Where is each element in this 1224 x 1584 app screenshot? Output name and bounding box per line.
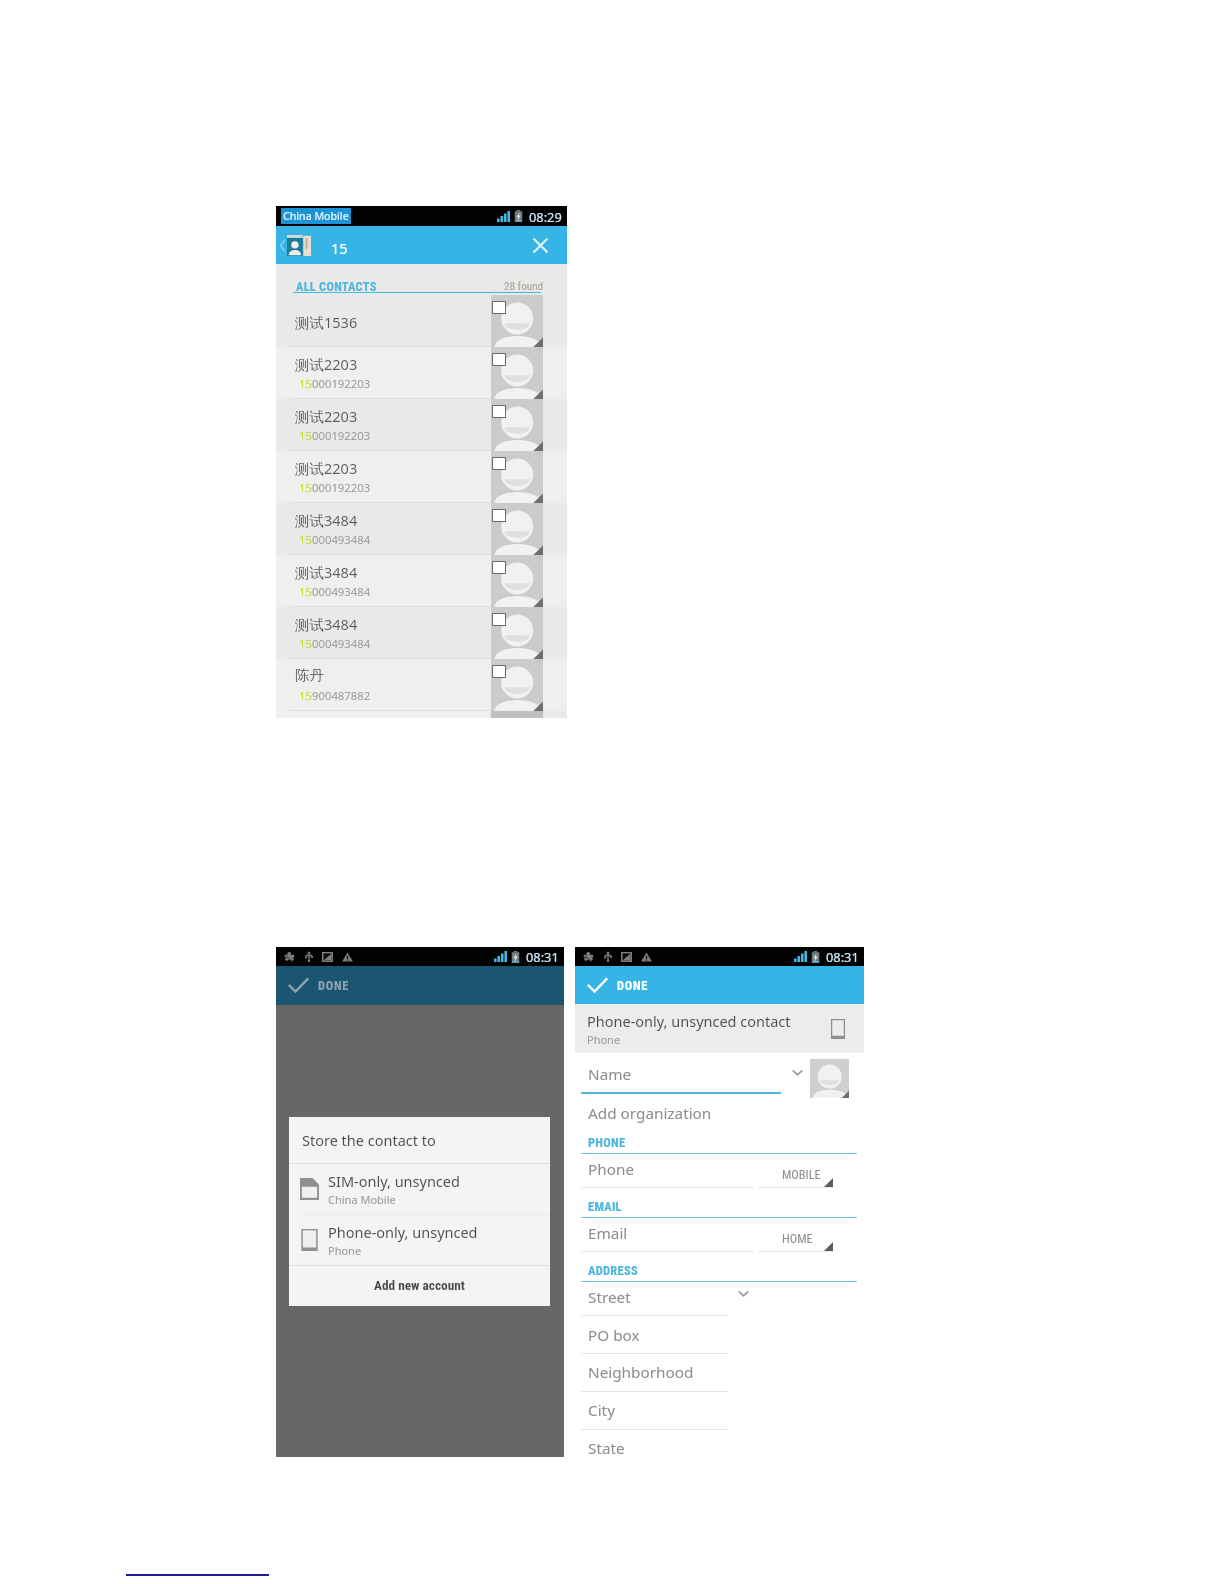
staticText: 测试3484 [295,562,358,582]
staticText: Phone-only, unsynced contact [587,1011,791,1031]
staticText: 000493484 [312,636,371,651]
staticText: 测试1536 [295,312,358,332]
button[interactable]: 测试3484 [276,555,567,607]
staticText: 15 [331,238,348,258]
staticText: DONE [617,978,648,993]
staticText: 15 [299,584,312,599]
staticText: Phone-only, unsynced [328,1222,478,1242]
staticText: 测试3484 [295,614,358,634]
staticText: 15 [299,532,312,547]
staticText: Add new account [374,1278,465,1294]
staticText: Store the contact to [302,1130,436,1150]
button[interactable]: 测试2203 [276,347,567,399]
staticText: 900487882 [312,688,371,703]
button[interactable]: 测试3484 [276,503,567,555]
staticText: SIM-only, unsynced [328,1171,460,1191]
button[interactable]: 测试2203 [276,451,567,503]
staticText: 陈丹 [295,666,324,684]
staticText: Email [588,1223,628,1244]
staticText: 000192203 [312,376,371,391]
button[interactable]: Email [575,1218,864,1252]
staticText: 08:29 [529,208,562,225]
button[interactable]: Name [575,1053,864,1094]
staticText: 15 [299,688,312,703]
button[interactable]: Phone-only, unsynced [289,1215,550,1265]
button[interactable]: Add organization [575,1094,864,1129]
staticText: 15 [299,480,312,495]
staticText: 28 found [504,280,544,293]
staticText: 测试2203 [295,458,358,478]
staticText: MOBILE [782,1167,821,1182]
staticText: PO box [588,1325,640,1346]
button[interactable]: Neighborhood [575,1354,864,1392]
button[interactable]: State [575,1430,864,1457]
staticText: 测试2203 [295,354,358,374]
staticText: HOME [782,1231,813,1246]
staticText: PHONE [588,1135,626,1150]
staticText: 000192203 [312,480,371,495]
staticText: State [588,1438,625,1459]
staticText: City [588,1400,615,1421]
staticText: DONE [318,978,349,993]
button[interactable]: Add new account [289,1266,550,1306]
staticText: China Mobile [328,1192,396,1207]
staticText: 08:31 [526,948,559,965]
staticText: Phone [328,1243,362,1258]
staticText: Neighborhood [588,1362,694,1383]
staticText: Street [588,1287,631,1308]
button[interactable]: Navigate up [276,226,316,264]
button[interactable]: ALL CONTACTS [276,264,567,295]
button[interactable]: 测试3484 [276,607,567,659]
staticText: 测试3484 [295,510,358,530]
staticText: 15 [299,428,312,443]
button[interactable]: PO box [575,1316,864,1354]
button[interactable]: City [575,1392,864,1430]
button[interactable]: Close [514,226,567,264]
button[interactable]: Street [575,1282,864,1316]
button[interactable]: 测试1536 [276,295,567,347]
button[interactable]: Phone [575,1154,864,1188]
staticText: Phone [588,1159,635,1180]
button[interactable]: SIM-only, unsynced [289,1164,550,1214]
staticText: ADDRESS [588,1263,638,1278]
staticText: 08:31 [826,948,859,965]
staticText: 15 [299,376,312,391]
staticText: China Mobile [283,209,349,223]
staticText: EMAIL [588,1199,622,1214]
staticText: 000192203 [312,428,371,443]
staticText: Add organization [588,1103,712,1124]
staticText: Phone [587,1032,621,1047]
button[interactable]: Phone-only, unsynced contact [575,1004,864,1053]
staticText: 000493484 [312,584,371,599]
staticText: 000493484 [312,532,371,547]
button[interactable]: 陈丹 [276,659,567,711]
staticText: 15 [299,636,312,651]
staticText: Name [588,1064,632,1085]
staticText: ALL CONTACTS [296,279,377,294]
button[interactable]: 测试2203 [276,399,567,451]
staticText: 测试2203 [295,406,358,426]
